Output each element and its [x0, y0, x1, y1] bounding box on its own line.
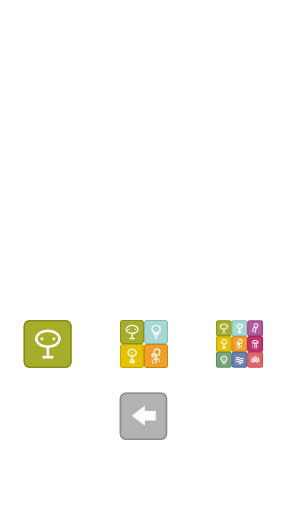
button[interactable]: Back: [120, 392, 167, 440]
button[interactable]: Single item layout: [24, 320, 72, 368]
button[interactable]: Nine item layout: [216, 320, 263, 367]
button[interactable]: Four item layout: [120, 320, 168, 368]
